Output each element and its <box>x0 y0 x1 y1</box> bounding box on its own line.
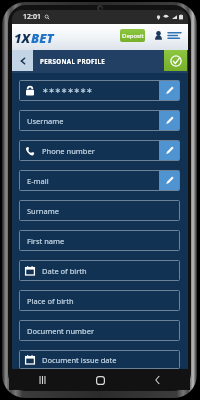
staticText: PERSONAL PROFILE <box>40 57 106 65</box>
button[interactable]: Home <box>91 371 109 389</box>
button[interactable]: Account <box>151 28 165 42</box>
button[interactable]: Recents <box>33 371 51 389</box>
button[interactable]: First name <box>19 230 180 251</box>
button[interactable]: Back <box>148 371 166 389</box>
button[interactable]: Document number <box>19 320 180 341</box>
staticText: 12:01 <box>23 12 41 22</box>
button[interactable]: Edit <box>159 171 179 190</box>
staticText: ∗∗∗∗∗∗∗∗ <box>42 86 93 95</box>
staticText: Username <box>27 116 64 126</box>
staticText: 1X <box>14 29 31 47</box>
button[interactable]: Edit <box>159 81 179 100</box>
button[interactable]: Date of birth <box>19 260 180 281</box>
button[interactable]: Edit <box>159 141 179 160</box>
button[interactable]: Username <box>19 110 180 131</box>
staticText: Place of birth <box>27 296 74 306</box>
staticText: Phone number <box>42 146 95 156</box>
staticText: Date of birth <box>42 266 87 276</box>
button[interactable]: Edit <box>159 111 179 130</box>
button[interactable]: Document issue date <box>19 350 180 369</box>
button[interactable]: Deposit <box>120 29 145 42</box>
staticText: Document number <box>27 326 95 336</box>
button[interactable]: Phone number <box>19 140 180 161</box>
staticText: First name <box>27 236 65 246</box>
staticText: E-mail <box>27 176 49 186</box>
staticText: BET <box>31 29 54 47</box>
button[interactable]: ∗∗∗∗∗∗∗∗ <box>19 80 180 101</box>
button[interactable]: Place of birth <box>19 290 180 311</box>
staticText: Surname <box>27 206 59 216</box>
button[interactable]: E-mail <box>19 170 180 191</box>
button[interactable]: Confirm <box>164 50 187 71</box>
staticText: Document issue date <box>42 355 117 365</box>
button[interactable]: Menu <box>167 28 181 42</box>
staticText: Deposit <box>122 32 144 40</box>
button[interactable]: Surname <box>19 200 180 221</box>
button[interactable]: Back <box>12 50 33 71</box>
